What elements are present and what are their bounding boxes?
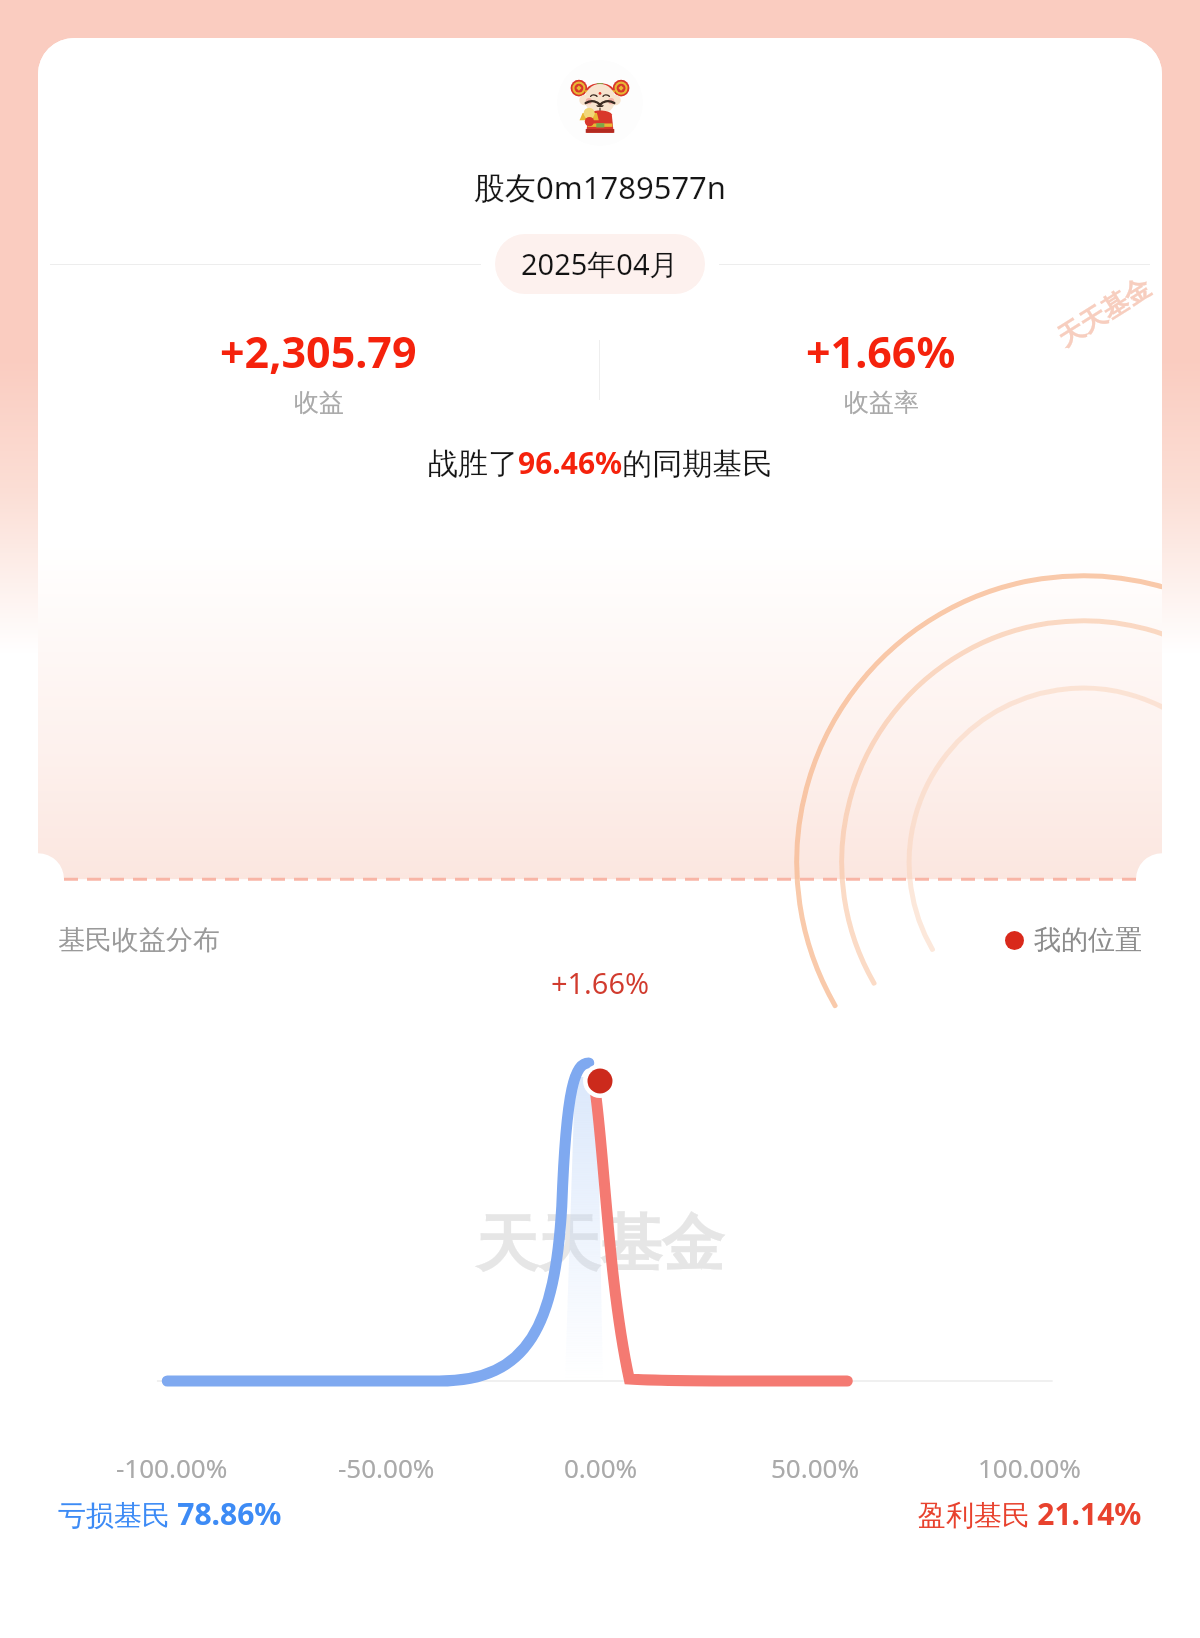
staticText: 收益 xyxy=(294,387,344,418)
button[interactable]: Avatar xyxy=(557,60,643,146)
button[interactable]: 我的位置 xyxy=(1005,923,1142,957)
staticText: 0.00% xyxy=(564,1450,638,1485)
button[interactable]: +2,305.79 xyxy=(38,322,599,418)
staticText: 我的位置 xyxy=(1034,923,1142,957)
staticText: 战胜了96.46%的同期基民 xyxy=(428,442,773,483)
staticText: -100.00% xyxy=(116,1450,228,1485)
staticText: 天天基金 xyxy=(476,1205,724,1283)
staticText: +2,305.79 xyxy=(220,322,417,381)
staticText: 基民收益分布 xyxy=(58,923,220,957)
staticText: 50.00% xyxy=(771,1450,860,1485)
button[interactable]: +1.66% xyxy=(600,322,1162,418)
staticText: -50.00% xyxy=(338,1450,435,1485)
staticText: 亏损基民 78.86% xyxy=(58,1493,282,1534)
staticText: +1.66% xyxy=(38,963,1162,1002)
staticText: 2025年04月 xyxy=(521,244,679,284)
staticText: 100.00% xyxy=(978,1450,1081,1485)
staticText: 天天基金 xyxy=(1051,271,1157,354)
staticText: 股友0m1789577n xyxy=(474,166,726,208)
staticText: 收益率 xyxy=(844,387,919,418)
staticText: 盈利基民 21.14% xyxy=(918,1493,1142,1534)
staticText: +1.66% xyxy=(806,322,956,381)
button[interactable]: 2025年04月 xyxy=(495,234,705,294)
